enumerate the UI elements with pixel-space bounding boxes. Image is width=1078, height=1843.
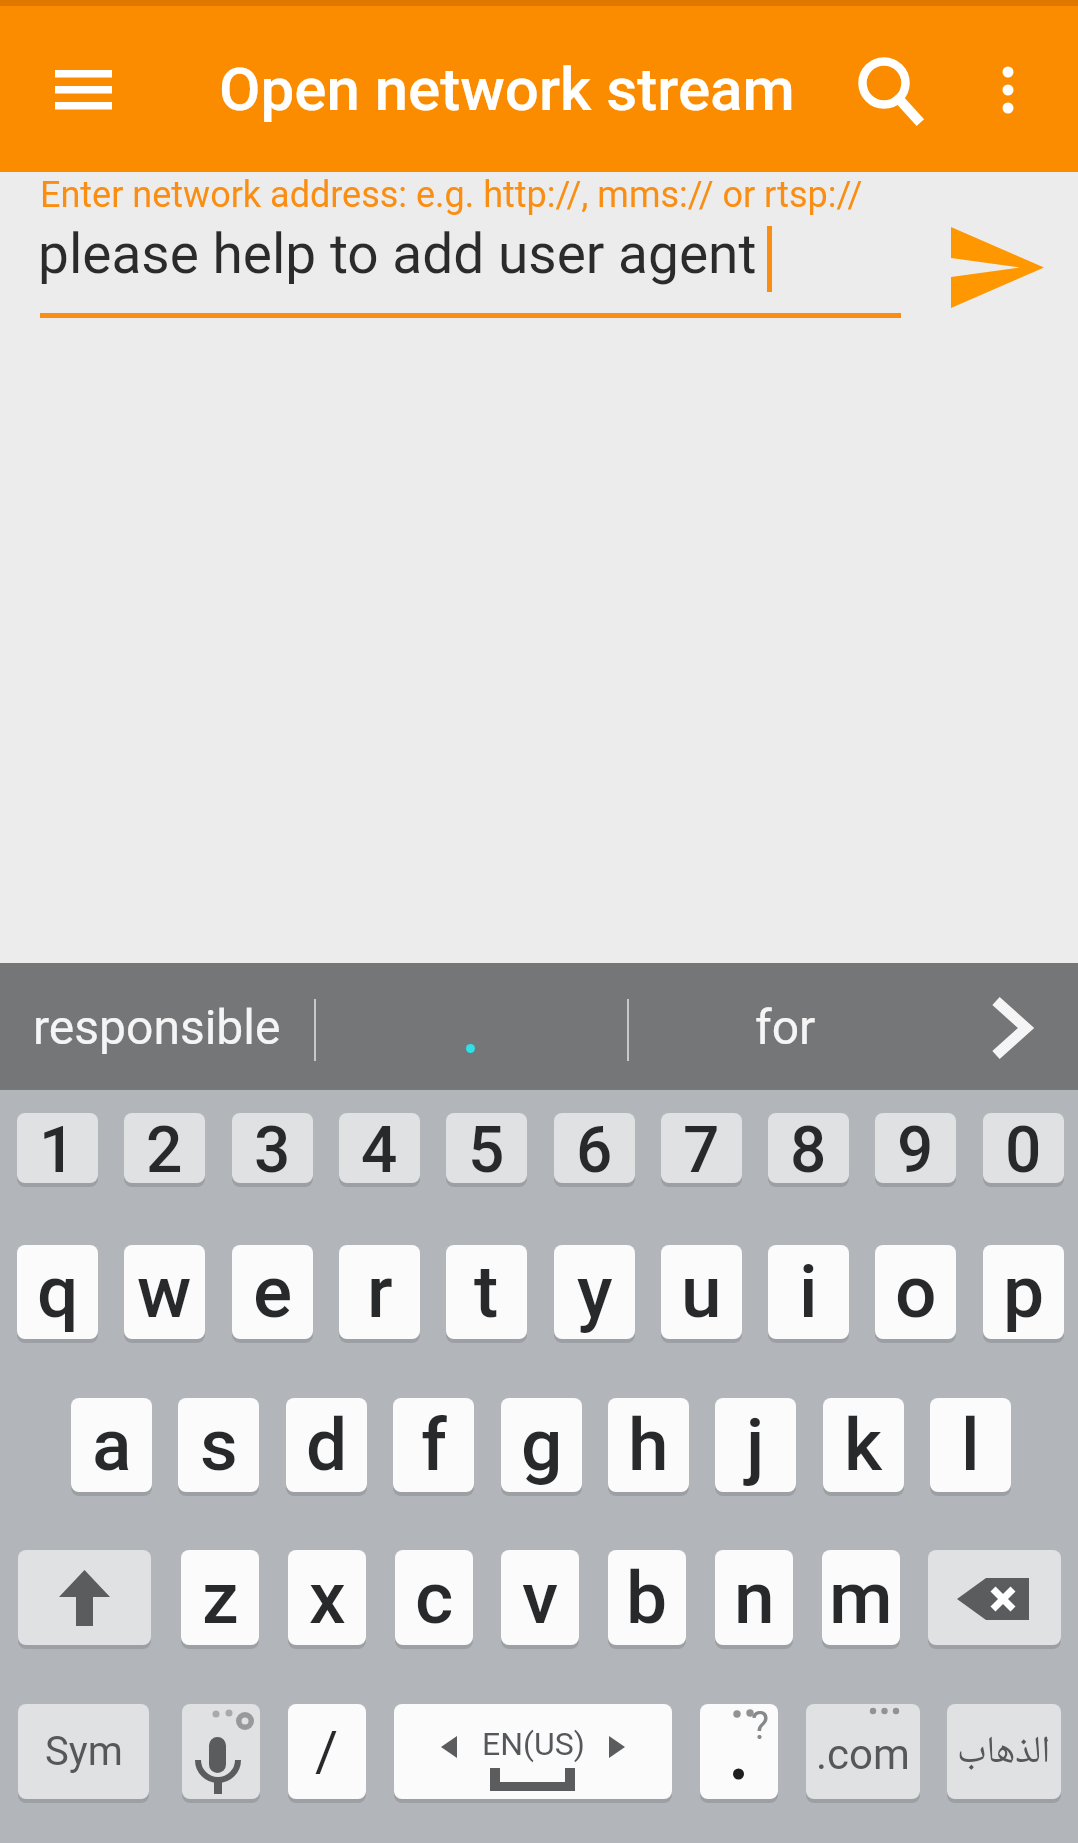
staticText: p — [1003, 1249, 1045, 1335]
button[interactable]: l — [930, 1398, 1011, 1492]
button[interactable]: f — [393, 1398, 474, 1492]
staticText: please help to add user agent — [38, 222, 757, 286]
button[interactable]: 2 — [124, 1113, 205, 1183]
button[interactable]: 5 — [446, 1113, 527, 1183]
button[interactable]: d — [286, 1398, 367, 1492]
button[interactable]: Sym — [18, 1704, 149, 1799]
staticText: w — [137, 1249, 192, 1335]
button[interactable]: e — [232, 1245, 313, 1339]
button[interactable]: 9 — [875, 1113, 956, 1183]
button[interactable]: / — [288, 1704, 366, 1799]
button[interactable]: h — [608, 1398, 689, 1492]
staticText: l — [961, 1402, 980, 1488]
staticText: z — [202, 1555, 239, 1641]
button[interactable] — [18, 1550, 151, 1645]
button[interactable] — [940, 215, 1055, 320]
button[interactable]: c — [395, 1550, 473, 1645]
button[interactable]: k — [823, 1398, 904, 1492]
staticText: c — [415, 1555, 454, 1641]
button[interactable]: 1 — [17, 1113, 98, 1183]
staticText: t — [474, 1249, 499, 1335]
staticText: v — [522, 1555, 559, 1641]
staticText: EN(US) — [482, 1725, 585, 1763]
button[interactable] — [31, 58, 137, 120]
staticText: f — [421, 1402, 447, 1488]
button[interactable]: EN(US) — [394, 1704, 672, 1799]
staticText: g — [521, 1402, 563, 1488]
staticText: o — [895, 1249, 937, 1335]
button[interactable]: responsible — [0, 963, 314, 1090]
button[interactable]: for — [627, 963, 943, 1090]
button[interactable]: z — [181, 1550, 259, 1645]
button[interactable]: y — [554, 1245, 635, 1339]
staticText: 1 — [39, 1113, 76, 1183]
staticText: 8 — [790, 1113, 827, 1183]
staticText: 4 — [361, 1113, 398, 1183]
button[interactable]: 7 — [661, 1113, 742, 1183]
button[interactable]: 3 — [232, 1113, 313, 1183]
button[interactable]: b — [608, 1550, 686, 1645]
staticText: j — [746, 1402, 765, 1488]
staticText: i — [799, 1249, 818, 1335]
staticText: for — [755, 999, 816, 1055]
staticText: 3 — [254, 1113, 291, 1183]
staticText: .com — [816, 1730, 910, 1779]
staticText: 7 — [683, 1113, 720, 1183]
button[interactable]: 0 — [983, 1113, 1064, 1183]
button[interactable]: 6 — [554, 1113, 635, 1183]
button[interactable] — [978, 50, 1038, 126]
button[interactable]: v — [501, 1550, 579, 1645]
button[interactable]: w — [124, 1245, 205, 1339]
staticText: a — [92, 1402, 132, 1488]
button[interactable]: t — [446, 1245, 527, 1339]
button[interactable]: i — [768, 1245, 849, 1339]
button[interactable]: s — [178, 1398, 259, 1492]
staticText: q — [37, 1249, 79, 1335]
button[interactable]: m — [822, 1550, 900, 1645]
staticText: 9 — [897, 1113, 934, 1183]
button[interactable]: g — [501, 1398, 582, 1492]
button[interactable]: 8 — [768, 1113, 849, 1183]
button[interactable]: q — [17, 1245, 98, 1339]
button[interactable]: j — [715, 1398, 796, 1492]
button[interactable]: a — [71, 1398, 152, 1492]
staticText: e — [253, 1249, 293, 1335]
staticText: x — [309, 1555, 346, 1641]
button[interactable]: p — [983, 1245, 1064, 1339]
staticText: 2 — [146, 1113, 183, 1183]
button[interactable]: x — [288, 1550, 366, 1645]
staticText: k — [844, 1402, 883, 1488]
staticText: s — [200, 1402, 238, 1488]
staticText: d — [306, 1402, 348, 1488]
staticText: Open network stream — [219, 54, 795, 124]
staticText: Enter network address: e.g. http://, mms… — [40, 174, 863, 216]
staticText: h — [628, 1402, 669, 1488]
button[interactable]: الذهاب — [947, 1704, 1061, 1799]
button[interactable] — [315, 963, 627, 1090]
button[interactable] — [960, 963, 1078, 1090]
staticText: Sym — [45, 1728, 123, 1775]
button[interactable] — [848, 50, 924, 126]
button[interactable]: r — [339, 1245, 420, 1339]
button[interactable]: ? — [700, 1704, 778, 1799]
button[interactable]: n — [715, 1550, 793, 1645]
button[interactable] — [30, 174, 905, 320]
staticText: b — [626, 1555, 668, 1641]
button[interactable]: .com — [806, 1704, 920, 1799]
staticText: الذهاب — [957, 1726, 1051, 1778]
button[interactable]: 4 — [339, 1113, 420, 1183]
staticText: r — [367, 1249, 393, 1335]
staticText: responsible — [33, 999, 281, 1055]
staticText: y — [577, 1249, 613, 1335]
staticText: 0 — [1005, 1113, 1042, 1183]
staticText: n — [734, 1555, 775, 1641]
button[interactable]: u — [661, 1245, 742, 1339]
button[interactable] — [182, 1704, 260, 1799]
button[interactable] — [928, 1550, 1061, 1645]
staticText: ? — [751, 1704, 769, 1749]
staticText: m — [829, 1555, 893, 1641]
staticText: u — [681, 1249, 722, 1335]
staticText: 5 — [468, 1113, 505, 1183]
button[interactable]: o — [875, 1245, 956, 1339]
staticText: 6 — [576, 1113, 613, 1183]
